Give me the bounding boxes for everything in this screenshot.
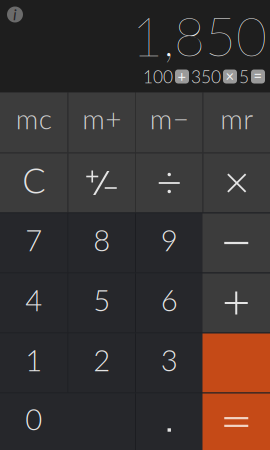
button[interactable]: 4	[0, 273, 67, 332]
staticText: +	[177, 67, 186, 85]
staticText: C	[22, 159, 45, 201]
button[interactable]: 1	[0, 333, 67, 392]
staticText: 100	[143, 66, 173, 87]
staticText: =	[253, 67, 262, 85]
staticText: i	[13, 4, 17, 24]
button[interactable]: mr	[203, 92, 270, 152]
button[interactable]: 0	[0, 393, 135, 450]
staticText: 5	[239, 66, 249, 87]
staticText: 9	[161, 222, 178, 258]
button[interactable]: Info	[0, 0, 30, 29]
staticText: m+	[82, 102, 121, 135]
button[interactable]: Divide	[136, 153, 202, 212]
staticText: 2	[93, 342, 110, 378]
button[interactable]: Equals	[202, 393, 270, 450]
staticText: 5	[93, 282, 110, 318]
button[interactable]: 7	[0, 213, 67, 272]
staticText: 6	[161, 282, 178, 318]
button[interactable]: 6	[136, 273, 202, 332]
staticText: 1	[25, 342, 42, 378]
staticText: 350	[191, 66, 221, 87]
staticText: 8	[93, 222, 110, 258]
staticText: mr	[220, 102, 253, 135]
button[interactable]: Minus	[202, 213, 270, 272]
button[interactable]: m−	[136, 92, 202, 152]
button[interactable]: Multiply	[203, 153, 270, 212]
button[interactable]: 2	[68, 333, 135, 392]
button[interactable]: 5	[68, 273, 135, 332]
staticText: 1,850	[132, 3, 267, 67]
button[interactable]: 8	[68, 213, 135, 272]
button[interactable]: Plus minus	[68, 153, 135, 212]
staticText: 4	[25, 282, 42, 318]
button[interactable]: mc	[0, 92, 67, 152]
button[interactable]: Decimal point	[136, 393, 202, 450]
button[interactable]: 3	[136, 333, 202, 392]
button[interactable]: Plus	[202, 273, 270, 332]
staticText: ×	[225, 67, 234, 85]
staticText: mc	[16, 102, 52, 135]
button[interactable]: C	[0, 153, 67, 212]
staticText: m−	[150, 102, 189, 135]
button[interactable]: Equals	[202, 333, 270, 392]
staticText: 7	[25, 222, 42, 258]
button[interactable]: m+	[68, 92, 135, 152]
button[interactable]: 9	[136, 213, 202, 272]
staticText: 3	[161, 342, 178, 378]
staticText: 0	[25, 401, 42, 437]
